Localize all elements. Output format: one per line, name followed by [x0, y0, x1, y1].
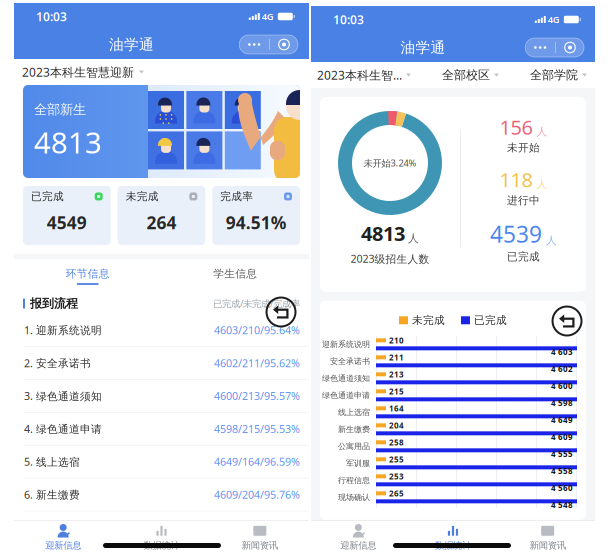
staticText: 未开始 [507, 141, 540, 154]
staticText: 4 548 [551, 499, 573, 510]
staticText: 绿色通道须知 [322, 373, 370, 383]
staticText: 4 603 [551, 346, 573, 357]
staticText: 4. 绿色通道申请 [24, 422, 102, 436]
staticText: 4598/215/95.53% [214, 422, 300, 436]
staticText: 已完成 [507, 250, 540, 263]
staticText: 行程信息 [338, 475, 370, 485]
staticText: 全部校区 [442, 68, 490, 82]
staticText: 报到流程 [30, 296, 78, 311]
staticText: 绿色通道申请 [322, 390, 370, 400]
staticText: 4609/204/95.76% [214, 487, 300, 502]
staticText: 4G [262, 10, 274, 23]
staticText: 已完成/未完成/完成率 [213, 297, 300, 310]
button[interactable]: 3. 绿色通道须知 [14, 380, 309, 413]
button[interactable]: 学生信息 [161, 259, 309, 293]
staticText: 4 555 [551, 448, 573, 459]
staticText: 现场确认 [338, 492, 370, 502]
staticText: 全部新生 [34, 101, 86, 118]
staticText: 4600/213/95.57% [214, 389, 300, 403]
button[interactable]: 迎新信息 [14, 521, 112, 553]
staticText: 全部学院 [530, 68, 578, 82]
staticText: 人 [408, 232, 419, 245]
staticText: 210 [389, 335, 404, 346]
staticText: 新闻资讯 [530, 540, 566, 551]
button[interactable]: Mini program menu [525, 38, 584, 57]
staticText: 数据统计 [435, 540, 471, 551]
button[interactable]: 数据统计 [406, 521, 500, 553]
staticText: 204 [389, 420, 404, 431]
staticText: 10:03 [36, 8, 67, 24]
staticText: 线上选宿 [338, 407, 370, 417]
staticText: 学生信息 [213, 267, 257, 280]
staticText: 军训服 [346, 458, 370, 468]
staticText: 4 600 [551, 380, 573, 391]
staticText: 253 [389, 471, 404, 482]
staticText: 118 [499, 166, 532, 193]
staticText: 新闻资讯 [242, 540, 278, 551]
staticText: 4813 [34, 123, 102, 162]
staticText: 265 [389, 488, 404, 499]
staticText: 156 [499, 114, 532, 140]
staticText: 258 [389, 437, 404, 448]
staticText: 人 [536, 125, 547, 138]
staticText: 未完成 [412, 314, 445, 327]
staticText: 完成率 [220, 190, 253, 203]
staticText: 未完成 [126, 190, 159, 203]
staticText: 2. 安全承诺书 [24, 356, 91, 370]
staticText: 211 [389, 352, 404, 363]
staticText: 已完成 [474, 314, 507, 327]
staticText: 4603/210/95.64% [214, 323, 300, 337]
button[interactable]: 6. 新生缴费 [14, 478, 309, 511]
staticText: 1. 迎新系统说明 [24, 323, 102, 337]
staticText: 264 [146, 211, 176, 234]
staticText: 公寓用品 [338, 441, 370, 451]
staticText: 4 558 [551, 465, 573, 476]
staticText: 215 [389, 386, 404, 397]
button[interactable]: 2. 安全承诺书 [14, 347, 309, 380]
staticText: 新生缴费 [338, 424, 370, 434]
button[interactable]: 1. 迎新系统说明 [14, 314, 309, 347]
staticText: 4 560 [551, 482, 573, 493]
staticText: 人 [536, 178, 547, 191]
staticText: 未开始3.24% [363, 157, 416, 169]
button[interactable]: 已完成 [23, 186, 111, 245]
staticText: 迎新系统说明 [322, 339, 370, 349]
button[interactable]: 环节信息 [14, 259, 161, 293]
staticText: 环节信息 [66, 267, 110, 280]
staticText: 2023级招生人数 [350, 252, 429, 266]
button[interactable]: Mini program menu [239, 35, 298, 54]
staticText: 已完成 [31, 190, 64, 203]
staticText: 2023本科生智... [317, 67, 402, 83]
button[interactable]: 新闻资讯 [500, 521, 595, 553]
button[interactable]: 数据统计 [112, 521, 211, 553]
staticText: 迎新信息 [340, 540, 376, 551]
staticText: 94.51% [226, 211, 287, 234]
staticText: 数据统计 [143, 540, 179, 551]
staticText: 4 609 [551, 431, 573, 442]
button[interactable]: 5. 线上选宿 [14, 446, 309, 478]
staticText: 10:03 [333, 11, 364, 27]
staticText: 人 [546, 234, 557, 247]
staticText: 迎新信息 [45, 540, 81, 551]
button[interactable]: 完成率 [212, 186, 300, 245]
staticText: 255 [389, 454, 404, 465]
button[interactable]: 全部校区 [442, 68, 499, 82]
button[interactable]: 新闻资讯 [211, 521, 309, 553]
staticText: 进行中 [507, 194, 540, 207]
staticText: 4539 [490, 219, 542, 249]
staticText: 4 598 [551, 397, 573, 408]
staticText: 4602/211/95.62% [214, 356, 300, 370]
button[interactable]: 4. 绿色通道申请 [14, 413, 309, 446]
button[interactable]: 未完成 [118, 186, 205, 245]
staticText: 安全承诺书 [330, 356, 370, 366]
staticText: 油学通 [109, 35, 154, 53]
staticText: 5. 线上选宿 [24, 455, 80, 469]
button[interactable]: 全部学院 [530, 68, 587, 82]
staticText: 2023本科生智慧迎新 [22, 64, 134, 80]
staticText: 4649/164/96.59% [214, 455, 300, 469]
staticText: 4813 [361, 220, 405, 247]
button[interactable]: 2023本科生智... [317, 67, 411, 83]
staticText: 4G [548, 13, 560, 26]
button[interactable]: 迎新信息 [311, 521, 406, 553]
staticText: 4 649 [551, 414, 573, 425]
